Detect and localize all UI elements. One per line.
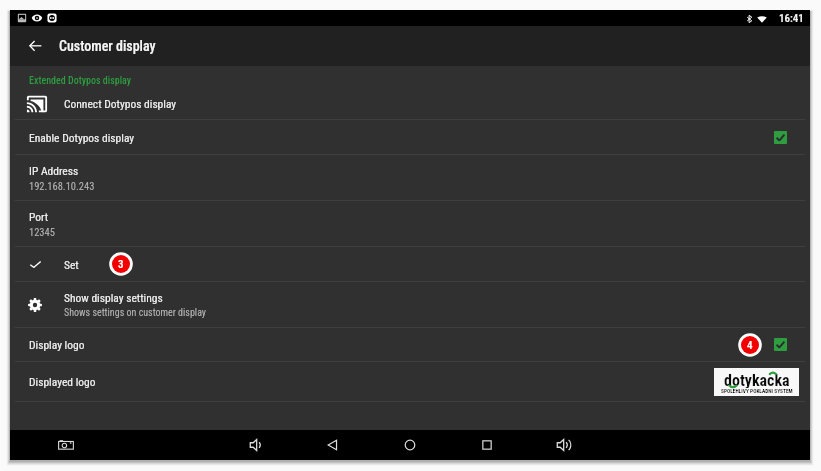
button[interactable]: Enable Dotypos display	[10, 120, 810, 154]
button[interactable]: Connect Dotypos display	[10, 88, 810, 119]
staticText: SPOLEHLIVY POKLADNI SYSTEM	[721, 388, 793, 394]
button[interactable]: Port	[10, 201, 810, 246]
staticText: 192.168.10.243	[29, 180, 95, 192]
staticText: 16:41	[779, 12, 804, 25]
staticText: 3	[118, 258, 124, 271]
button[interactable]: Screenshot	[56, 435, 76, 455]
staticText: 12345	[29, 226, 55, 238]
staticText: Customer display	[59, 38, 156, 54]
staticText: Port	[29, 210, 49, 223]
staticText: Displayed logo	[29, 375, 96, 388]
button[interactable]: Set	[10, 247, 810, 281]
button[interactable]: Back	[21, 32, 49, 60]
button[interactable]: Recents	[477, 435, 497, 455]
button[interactable]: Display logo	[10, 328, 810, 361]
staticText: Show display settings	[64, 291, 163, 304]
staticText: Connect Dotypos display	[64, 97, 177, 110]
staticText: Extended Dotypos display	[29, 75, 132, 87]
staticText: dotykacka	[724, 371, 790, 388]
staticText: IP Address	[29, 164, 79, 177]
staticText: Set	[64, 258, 79, 271]
staticText: 4	[747, 339, 753, 352]
button[interactable]: Displayed logo	[10, 362, 810, 401]
button[interactable]: Back	[323, 435, 343, 455]
staticText: Shows settings on customer display	[64, 307, 207, 319]
button[interactable]: Volume down	[247, 435, 267, 455]
button[interactable]: Volume up	[554, 435, 574, 455]
button[interactable]: IP Address	[10, 155, 810, 200]
staticText: Display logo	[29, 338, 85, 351]
staticText: Enable Dotypos display	[29, 131, 135, 144]
button[interactable]: Home	[400, 435, 420, 455]
button[interactable]: Show display settings	[10, 282, 810, 327]
